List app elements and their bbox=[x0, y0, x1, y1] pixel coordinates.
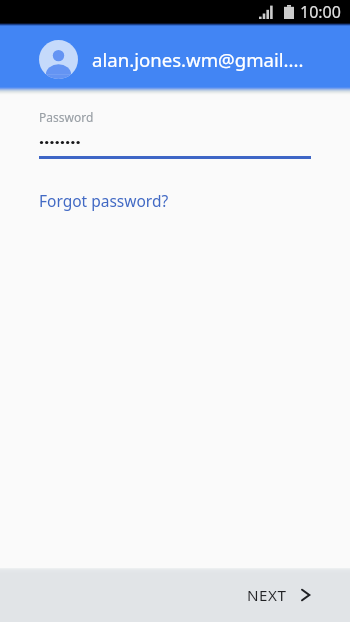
button[interactable]: NEXT bbox=[223, 571, 350, 620]
button[interactable]: Forgot password? bbox=[0, 190, 185, 211]
button[interactable]: Password field bbox=[39, 97, 311, 159]
staticText: Password bbox=[39, 109, 94, 125]
other: Account avatar bbox=[39, 40, 78, 79]
staticText: alan.jones.wm@gmail.... bbox=[92, 47, 304, 72]
staticText: 10:00 bbox=[300, 1, 341, 23]
staticText: NEXT bbox=[247, 585, 287, 606]
button[interactable]: Account avatar bbox=[0, 24, 350, 79]
staticText: Forgot password? bbox=[39, 190, 169, 211]
